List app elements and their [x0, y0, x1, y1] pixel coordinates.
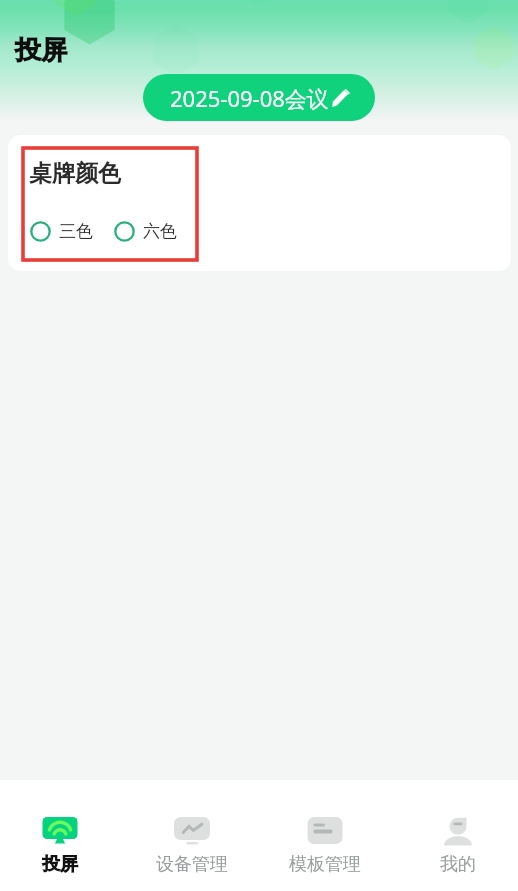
- staticText: 六色: [143, 221, 177, 242]
- button[interactable]: 设备管理: [126, 780, 258, 891]
- staticText: 模板管理: [289, 853, 361, 876]
- staticText: 投屏: [42, 853, 78, 876]
- button[interactable]: 投屏: [0, 780, 126, 891]
- button[interactable]: 模板管理: [258, 780, 391, 891]
- button[interactable]: 我的: [391, 780, 518, 891]
- staticText: 我的: [440, 853, 476, 876]
- staticText: 桌牌颜色: [29, 159, 121, 188]
- staticText: 2025-09-08会议: [170, 83, 329, 113]
- staticText: 设备管理: [156, 853, 228, 876]
- button[interactable]: 三色: [30, 221, 93, 242]
- other: Edit meeting name: [332, 88, 351, 108]
- staticText: 三色: [59, 221, 93, 242]
- staticText: 投屏: [15, 34, 67, 67]
- button[interactable]: 六色: [114, 221, 177, 242]
- button[interactable]: 2025-09-08会议: [143, 74, 375, 121]
